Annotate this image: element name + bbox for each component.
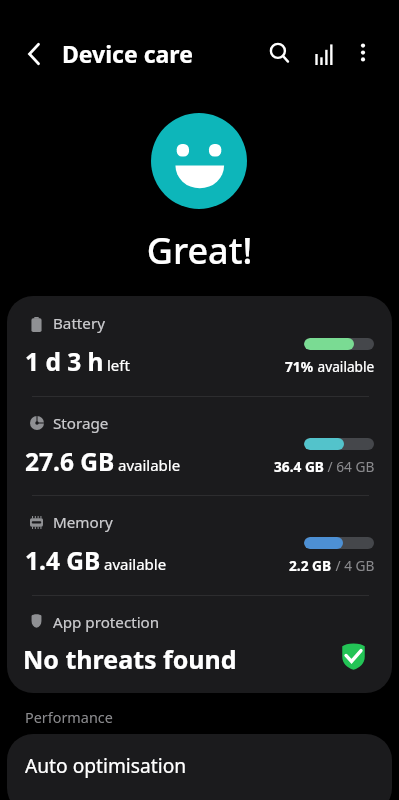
button[interactable]: Auto optimisation xyxy=(7,734,392,800)
button[interactable]: Storage xyxy=(7,396,392,496)
staticText: 1.4 GB xyxy=(25,544,101,577)
staticText: available xyxy=(118,455,181,475)
staticText: No threats found xyxy=(23,642,237,676)
staticText: App protection xyxy=(53,612,160,633)
staticText: 71% xyxy=(285,357,314,376)
staticText: Memory xyxy=(53,512,113,533)
button[interactable]: Usage statistics xyxy=(306,37,342,73)
staticText: available xyxy=(104,554,167,574)
staticText: available xyxy=(314,357,375,376)
staticText: Battery xyxy=(53,313,105,334)
staticText: 27.6 GB xyxy=(25,445,115,478)
staticText: / 4 GB xyxy=(332,556,375,575)
staticText: Great! xyxy=(0,226,399,275)
staticText: Auto optimisation xyxy=(25,752,187,778)
staticText: 36.4 GB xyxy=(274,457,324,476)
button[interactable]: Search xyxy=(261,35,297,71)
button[interactable]: More options xyxy=(345,35,381,71)
staticText: / 64 GB xyxy=(324,457,375,476)
button[interactable]: Battery xyxy=(7,296,392,396)
staticText: Storage xyxy=(53,413,109,434)
button[interactable]: Memory xyxy=(7,495,392,595)
staticText: Performance xyxy=(25,708,113,728)
staticText: 2.2 GB xyxy=(289,556,332,575)
staticText: Device care xyxy=(62,38,193,69)
staticText: 1 d 3 h xyxy=(25,345,104,378)
staticText: left xyxy=(107,355,130,375)
button[interactable]: Navigate up xyxy=(16,36,52,72)
button[interactable]: App protection xyxy=(7,595,392,693)
